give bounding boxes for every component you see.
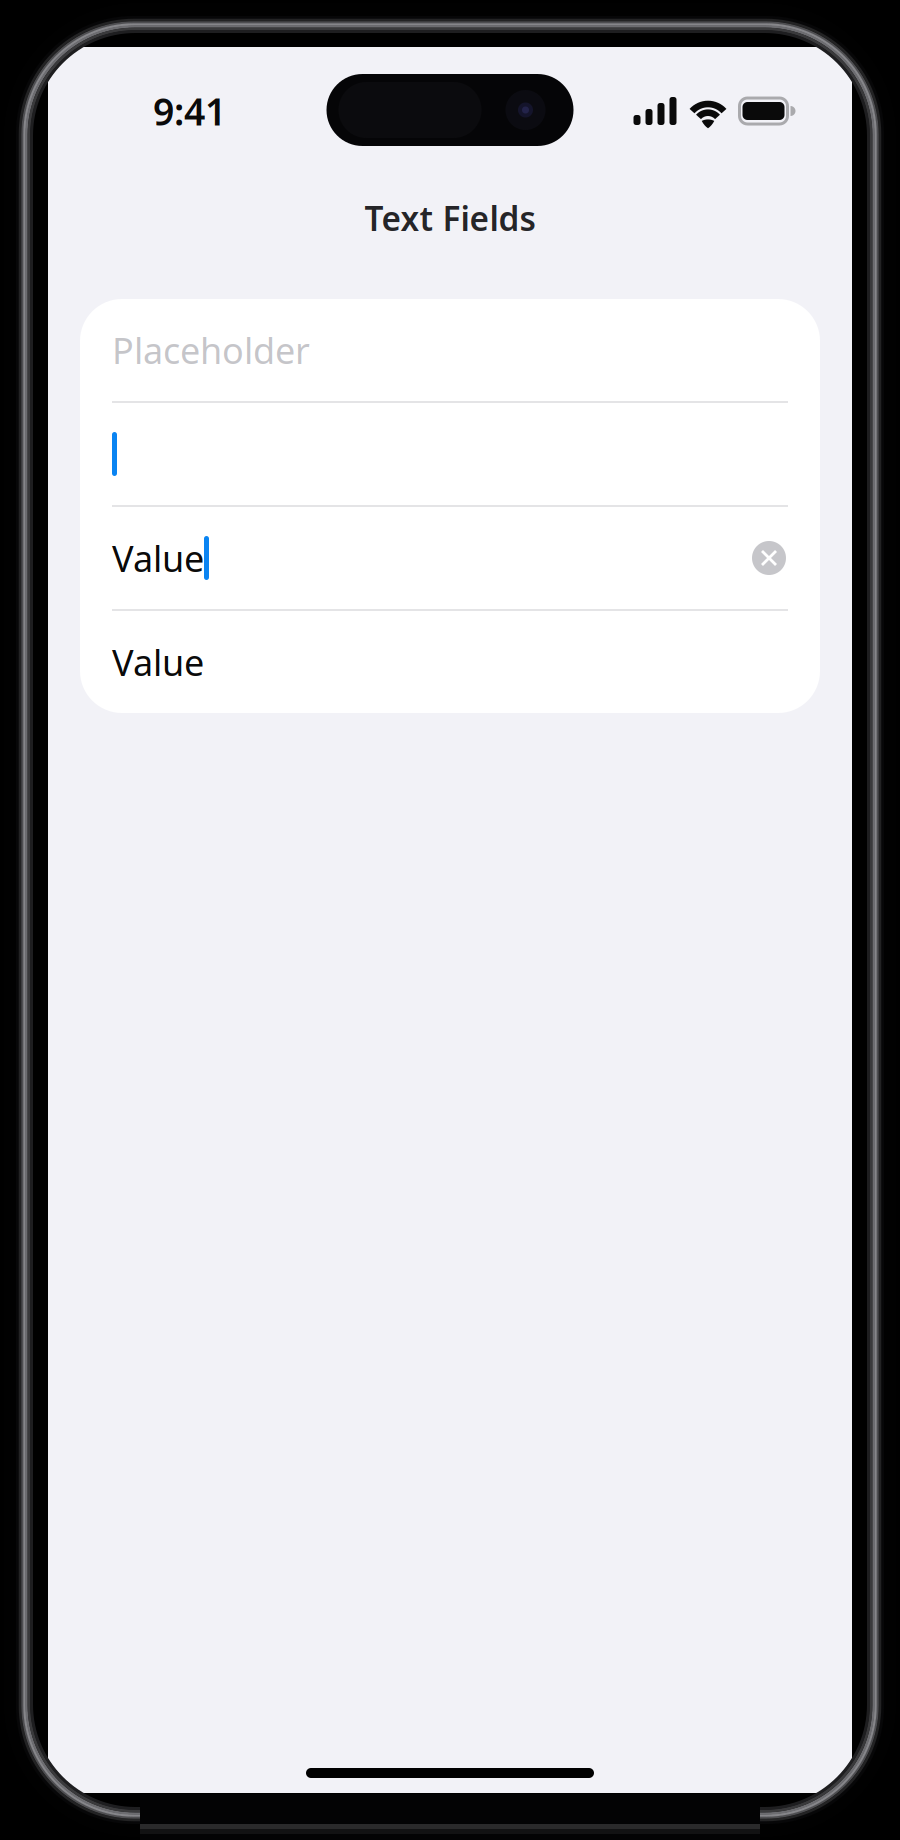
- staticText: Placeholder: [112, 326, 310, 374]
- button[interactable]: Value: [80, 507, 820, 609]
- staticText: Text Fields: [364, 196, 535, 240]
- staticText: Value: [112, 638, 204, 686]
- button[interactable]: Value: [80, 611, 820, 713]
- button[interactable]: [80, 403, 820, 505]
- button[interactable]: Clear text: [740, 529, 798, 587]
- staticText: Value: [112, 534, 204, 582]
- staticText: 9:41: [153, 86, 226, 136]
- button[interactable]: Placeholder: [80, 299, 820, 401]
